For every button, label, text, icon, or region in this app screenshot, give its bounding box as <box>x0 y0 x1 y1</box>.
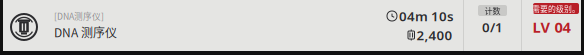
staticText: 0/1 <box>482 18 503 36</box>
button[interactable]: 计数 <box>464 0 521 51</box>
staticText: 需要的级别。 <box>532 3 580 14</box>
button[interactable]: 需要的级别。 <box>522 0 581 51</box>
staticText: 04m 10s <box>399 7 454 25</box>
staticText: 2,400 <box>416 26 452 44</box>
staticText: DNA 测序仪 <box>54 23 117 41</box>
button[interactable]: [DNA测序仪] <box>0 0 300 51</box>
staticText: 计数 <box>484 5 500 16</box>
staticText: LV 04 <box>532 17 570 37</box>
staticText: [DNA测序仪] <box>54 10 104 22</box>
